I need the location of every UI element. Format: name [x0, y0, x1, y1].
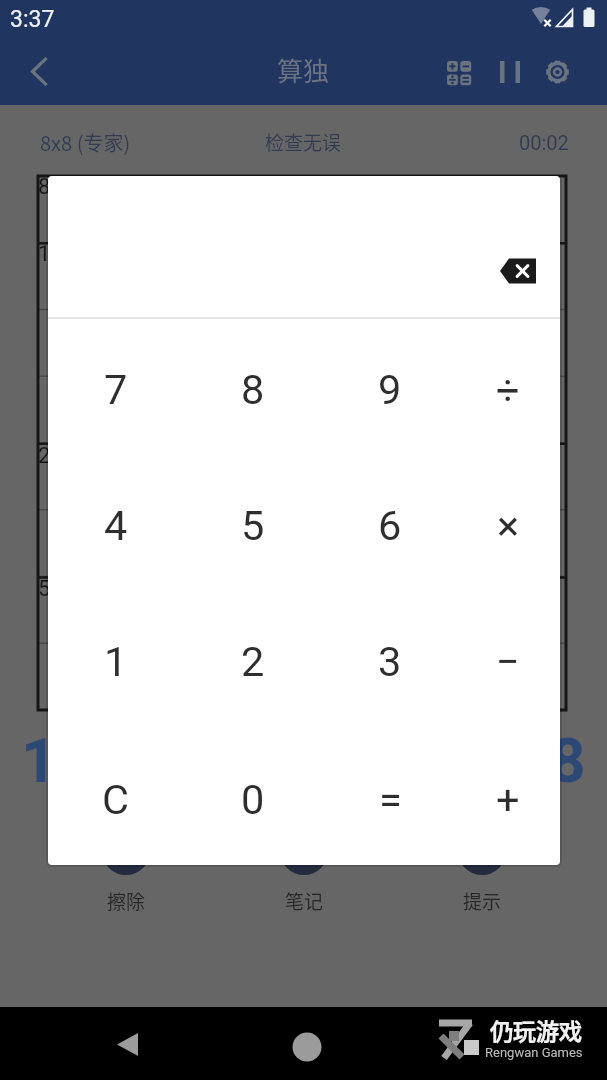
staticText: Rengwan Games: [485, 1045, 583, 1060]
button[interactable]: =: [342, 739, 438, 859]
button[interactable]: 2: [205, 601, 301, 721]
button[interactable]: [494, 56, 526, 88]
staticText: 0: [241, 775, 265, 824]
button[interactable]: [443, 56, 477, 88]
staticText: ×: [497, 501, 520, 550]
staticText: 5: [38, 576, 51, 602]
button[interactable]: 5: [205, 465, 301, 585]
button[interactable]: ÷: [460, 329, 556, 449]
button[interactable]: [103, 1021, 151, 1069]
button[interactable]: 提示: [402, 871, 562, 931]
button[interactable]: [541, 55, 575, 89]
button[interactable]: −: [460, 601, 556, 721]
button[interactable]: 7: [68, 329, 164, 449]
button[interactable]: 擦除: [46, 871, 206, 931]
staticText: ÷: [496, 365, 520, 414]
staticText: 5: [241, 501, 265, 550]
staticText: 4: [104, 501, 128, 550]
staticText: 擦除: [107, 887, 146, 915]
button[interactable]: 笔记: [224, 871, 384, 931]
staticText: 8x8 (专家): [40, 128, 131, 157]
staticText: 1: [38, 241, 51, 267]
button[interactable]: C: [68, 739, 164, 859]
staticText: 提示: [463, 887, 502, 915]
staticText: 7: [104, 365, 128, 414]
staticText: 1: [21, 724, 57, 784]
staticText: 8: [241, 365, 265, 414]
staticText: 8: [38, 174, 51, 200]
button[interactable]: 0: [205, 739, 301, 859]
button[interactable]: 1: [68, 601, 164, 721]
staticText: 检查无误: [265, 128, 342, 156]
button[interactable]: 9: [342, 329, 438, 449]
staticText: +: [496, 775, 520, 824]
staticText: 1: [104, 637, 128, 686]
button[interactable]: ×: [460, 465, 556, 585]
button[interactable]: 3: [342, 601, 438, 721]
staticText: 2: [38, 443, 51, 469]
staticText: C: [102, 775, 130, 824]
staticText: 仍玩游戏: [490, 1013, 582, 1046]
button[interactable]: [494, 250, 542, 292]
staticText: 算独: [277, 51, 330, 89]
staticText: 笔记: [285, 887, 324, 915]
button[interactable]: [283, 1022, 331, 1070]
button[interactable]: 4: [68, 465, 164, 585]
button[interactable]: +: [460, 739, 556, 859]
button[interactable]: [18, 52, 58, 92]
staticText: −: [496, 637, 520, 686]
staticText: 8: [550, 724, 586, 784]
staticText: =: [379, 775, 402, 824]
staticText: 2: [241, 637, 265, 686]
staticText: 3: [378, 637, 402, 686]
staticText: 9: [378, 365, 402, 414]
button[interactable]: 6: [342, 465, 438, 585]
staticText: 6: [378, 501, 402, 550]
button[interactable]: 8: [205, 329, 301, 449]
staticText: 3:37: [10, 6, 55, 33]
staticText: 00:02: [519, 131, 569, 154]
